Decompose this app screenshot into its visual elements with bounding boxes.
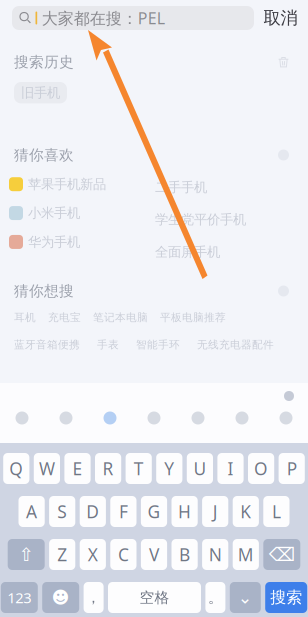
button[interactable]: 蓝牙音箱便携 xyxy=(14,338,80,351)
staticText: T xyxy=(134,457,144,480)
button[interactable]: N xyxy=(202,539,228,570)
staticText: 智能手环 xyxy=(136,338,180,351)
button[interactable]: Refresh recommendations xyxy=(278,149,289,160)
staticText: U xyxy=(193,457,206,480)
button[interactable]: 无线充电器配件 xyxy=(197,338,274,351)
button[interactable]: V xyxy=(141,539,167,570)
button[interactable]: Keyboard tool xyxy=(88,406,132,430)
button[interactable]: 充电宝 xyxy=(48,311,81,324)
staticText: Y xyxy=(164,457,174,480)
staticText: 学生党平价手机 xyxy=(155,211,246,228)
button[interactable]: X xyxy=(80,539,106,570)
button[interactable]: L xyxy=(263,496,289,527)
button[interactable]: M xyxy=(233,539,259,570)
button[interactable]: Refresh suggestions xyxy=(278,285,289,296)
staticText: B xyxy=(179,543,190,566)
staticText: N xyxy=(209,543,222,566)
staticText: D xyxy=(86,500,99,523)
button[interactable]: Keyboard tool xyxy=(264,406,308,430)
staticText: 苹果手机新品 xyxy=(28,176,106,192)
button[interactable]: A xyxy=(18,496,45,527)
staticText: 大家都在搜：PEL xyxy=(42,7,165,29)
button[interactable]: H xyxy=(171,496,198,527)
staticText: 。 xyxy=(208,588,223,606)
button[interactable]: 旧手机 xyxy=(14,82,67,103)
staticText: 取消 xyxy=(263,7,297,29)
button[interactable]: ⌄ xyxy=(230,582,261,613)
staticText: H xyxy=(178,500,191,523)
button[interactable]: G xyxy=(141,496,167,527)
button[interactable]: F xyxy=(110,496,136,527)
button[interactable]: 笔记本电脑 xyxy=(93,311,148,324)
button[interactable]: Q xyxy=(3,453,29,484)
button[interactable]: E xyxy=(64,453,91,484)
button[interactable]: Y xyxy=(156,453,182,484)
staticText: 蓝牙音箱便携 xyxy=(14,338,80,351)
staticText: S xyxy=(57,500,67,523)
button[interactable]: R xyxy=(95,453,121,484)
button[interactable]: 智能手环 xyxy=(136,338,180,351)
staticText: 旧手机 xyxy=(21,84,60,101)
staticText: P xyxy=(287,457,297,480)
staticText: K xyxy=(240,500,251,523)
button[interactable]: 全面屏手机 xyxy=(155,244,220,260)
staticText: ， xyxy=(86,588,101,606)
staticText: 空格 xyxy=(139,588,169,606)
staticText: R xyxy=(103,457,114,480)
button[interactable]: 搜索 xyxy=(265,582,307,613)
staticText: 耳机 xyxy=(14,311,36,324)
staticText: I xyxy=(227,457,233,480)
button[interactable]: Z xyxy=(49,539,75,570)
staticText: 123 xyxy=(7,588,31,607)
staticText: A xyxy=(26,500,37,523)
button[interactable]: 平板电脑推荐 xyxy=(160,311,226,324)
staticText: ⌄ xyxy=(238,588,253,607)
button[interactable]: J xyxy=(202,496,228,527)
button[interactable]: Keyboard tool xyxy=(0,406,44,430)
button[interactable]: 二手手机 xyxy=(155,179,207,195)
staticText: 猜你喜欢 xyxy=(14,146,74,164)
staticText: ⇧ xyxy=(18,544,34,565)
button[interactable]: W xyxy=(34,453,60,484)
button[interactable]: Hide keyboard xyxy=(275,387,303,405)
button[interactable]: ， xyxy=(84,582,104,613)
button[interactable]: B xyxy=(171,539,198,570)
button[interactable]: O xyxy=(248,453,274,484)
button[interactable]: 。 xyxy=(205,582,225,613)
button[interactable]: S xyxy=(49,496,75,527)
button[interactable]: 学生党平价手机 xyxy=(155,211,246,228)
button[interactable]: Keyboard tool xyxy=(44,406,88,430)
button[interactable]: 取消 xyxy=(254,6,307,29)
button[interactable]: U xyxy=(187,453,213,484)
button[interactable]: ☻ xyxy=(42,582,79,613)
button[interactable]: ⌫ xyxy=(263,539,300,570)
button[interactable]: P xyxy=(279,453,305,484)
button[interactable]: 手表 xyxy=(97,338,119,351)
staticText: 搜索 xyxy=(270,588,302,607)
button[interactable]: C xyxy=(110,539,136,570)
button[interactable]: 空格 xyxy=(108,582,201,613)
button[interactable]: T xyxy=(126,453,152,484)
button[interactable]: I xyxy=(217,453,244,484)
staticText: X xyxy=(88,543,98,566)
staticText: Z xyxy=(57,543,67,566)
button[interactable]: 耳机 xyxy=(14,311,36,324)
button[interactable]: 苹果手机新品 xyxy=(9,176,106,192)
button[interactable]: K xyxy=(233,496,259,527)
button[interactable]: Clear search history xyxy=(278,56,289,67)
staticText: 无线充电器配件 xyxy=(197,338,274,351)
button[interactable]: 小米手机 xyxy=(9,205,80,221)
button[interactable]: ⇧ xyxy=(8,539,45,570)
button[interactable]: 123 xyxy=(1,582,38,613)
staticText: 小米手机 xyxy=(28,205,80,221)
button[interactable]: Keyboard tool xyxy=(176,406,220,430)
staticText: 充电宝 xyxy=(48,311,81,324)
staticText: L xyxy=(272,500,281,523)
staticText: E xyxy=(72,457,82,480)
button[interactable]: 华为手机 xyxy=(9,234,80,250)
button[interactable]: Keyboard tool xyxy=(132,406,176,430)
button[interactable]: Keyboard tool xyxy=(220,406,264,430)
staticText: 二手手机 xyxy=(155,179,207,195)
staticText: 猜你想搜 xyxy=(14,282,74,300)
button[interactable]: D xyxy=(80,496,106,527)
